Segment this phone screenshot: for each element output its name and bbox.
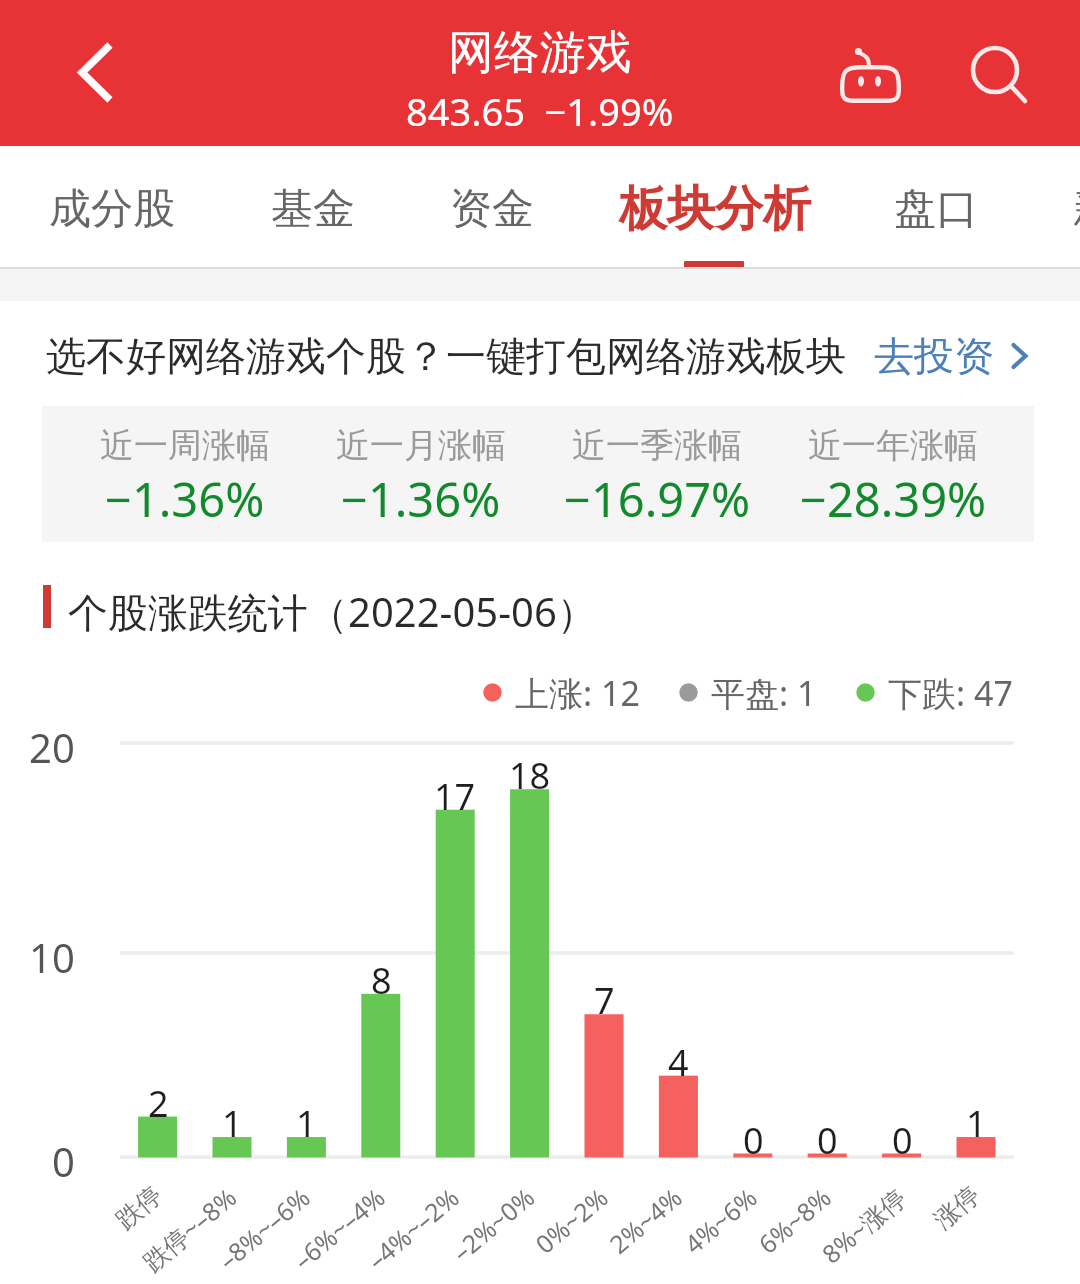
button[interactable]: 选不好网络游戏个股？一键打包网络游戏板块: [46, 314, 1040, 398]
staticText: 近一季涨幅: [572, 424, 742, 467]
staticText: 个股涨跌统计（2022-05-06）: [68, 584, 597, 639]
staticText: 网络游戏: [448, 24, 632, 82]
staticText: –4%~–2%: [360, 1180, 466, 1277]
staticText: 6%~8%: [751, 1180, 838, 1261]
staticText: 10: [29, 930, 75, 984]
staticText: 选不好网络游戏个股？一键打包网络游戏板块: [46, 331, 846, 381]
staticText: 2%~4%: [602, 1180, 689, 1261]
staticText: 18: [509, 751, 551, 800]
button[interactable]: Back: [47, 28, 137, 118]
staticText: 跌停: [110, 1180, 168, 1235]
button[interactable]: AI assistant: [820, 28, 921, 129]
staticText: 涨停: [928, 1180, 986, 1235]
staticText: 上涨: 12: [515, 670, 640, 714]
staticText: 2: [148, 1079, 169, 1128]
staticText: 资金: [450, 183, 534, 236]
staticText: –6%~–4%: [286, 1180, 392, 1277]
staticText: 20: [29, 720, 75, 774]
staticText: –8%~–6%: [211, 1180, 317, 1277]
staticText: 基金: [271, 183, 355, 236]
staticText: 0: [52, 1134, 75, 1188]
button[interactable]: Search: [945, 20, 1045, 120]
staticText: 4: [668, 1038, 689, 1087]
staticText: 新闻: [1073, 183, 1080, 236]
button[interactable]: 基金: [271, 183, 355, 236]
staticText: −1.36%: [341, 467, 501, 531]
button[interactable]: 板块分析: [619, 179, 811, 239]
staticText: 近一年涨幅: [808, 424, 978, 467]
staticText: 17: [434, 772, 476, 821]
staticText: 1: [222, 1099, 243, 1148]
staticText: −1.36%: [105, 467, 265, 531]
staticText: 0%~2%: [528, 1180, 615, 1261]
staticText: 1: [966, 1099, 987, 1148]
staticText: 843.65 −1.99%: [406, 85, 674, 137]
staticText: 板块分析: [619, 179, 811, 239]
staticText: 0: [743, 1116, 764, 1165]
button[interactable]: 成分股: [49, 183, 175, 236]
staticText: 1: [296, 1099, 317, 1148]
staticText: −16.97%: [564, 467, 751, 531]
staticText: 7: [594, 976, 615, 1025]
button[interactable]: 新闻: [1073, 183, 1080, 236]
button[interactable]: 资金: [450, 183, 534, 236]
staticText: 0: [892, 1116, 913, 1165]
staticText: 0: [817, 1116, 838, 1165]
staticText: 盘口: [894, 183, 978, 236]
staticText: 4%~6%: [677, 1180, 764, 1261]
staticText: 近一月涨幅: [336, 424, 506, 467]
staticText: –2%~0%: [445, 1180, 541, 1268]
staticText: 去投资: [874, 331, 994, 381]
staticText: 跌停~–8%: [135, 1180, 243, 1278]
staticText: 下跌: 47: [888, 670, 1013, 714]
staticText: 8: [371, 956, 392, 1005]
staticText: 近一周涨幅: [100, 424, 270, 467]
staticText: 成分股: [49, 183, 175, 236]
staticText: 8%~涨停: [814, 1180, 913, 1270]
staticText: 平盘: 1: [711, 670, 817, 714]
button[interactable]: 盘口: [894, 183, 978, 236]
staticText: −28.39%: [800, 467, 987, 531]
